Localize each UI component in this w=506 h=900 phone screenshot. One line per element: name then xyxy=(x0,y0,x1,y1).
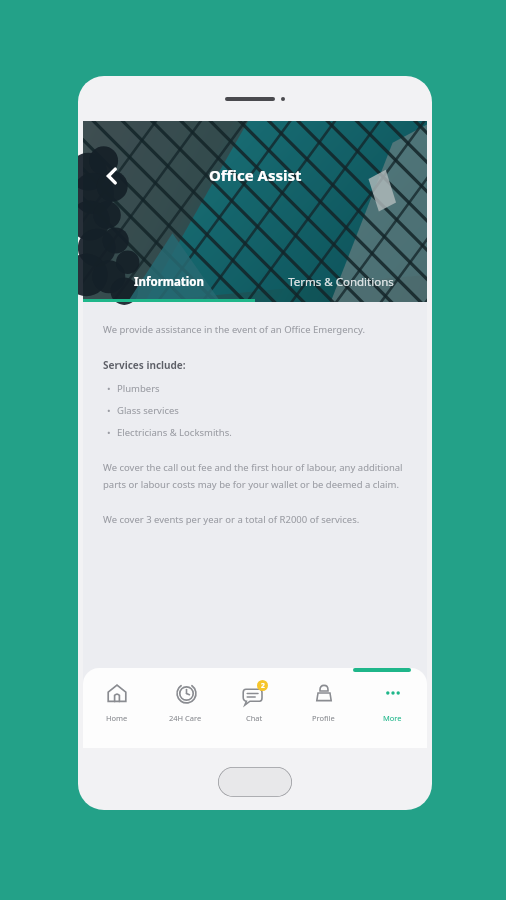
staticText: More xyxy=(383,713,402,723)
staticText: • xyxy=(107,404,111,417)
button[interactable]: Profile xyxy=(289,680,358,748)
staticText: Services include: xyxy=(103,358,186,372)
staticText: Office Assist xyxy=(209,165,302,185)
button[interactable]: 2 xyxy=(220,680,289,748)
staticText: • xyxy=(107,426,111,439)
staticText: • xyxy=(107,382,111,395)
staticText: Home xyxy=(106,713,128,723)
staticText: We cover the call out fee and the first … xyxy=(103,461,407,491)
staticText: 2 xyxy=(261,681,265,690)
button[interactable]: More xyxy=(358,680,427,748)
button[interactable]: Home xyxy=(83,680,151,748)
staticText: Chat xyxy=(246,713,263,723)
button[interactable]: 24H Care xyxy=(151,680,220,748)
staticText: Profile xyxy=(312,713,335,723)
staticText: Plumbers xyxy=(117,382,160,395)
staticText: 24H Care xyxy=(169,713,202,723)
button[interactable]: Information xyxy=(83,262,255,302)
staticText: Electricians & Locksmiths. xyxy=(117,426,232,439)
staticText: Terms & Conditions xyxy=(288,274,394,290)
staticText: We provide assistance in the event of an… xyxy=(103,323,365,336)
staticText: We cover 3 events per year or a total of… xyxy=(103,513,360,526)
button[interactable]: Terms & Conditions xyxy=(255,262,427,302)
staticText: Glass services xyxy=(117,404,179,417)
staticText: Information xyxy=(134,274,204,290)
button[interactable]: Back xyxy=(95,159,129,193)
